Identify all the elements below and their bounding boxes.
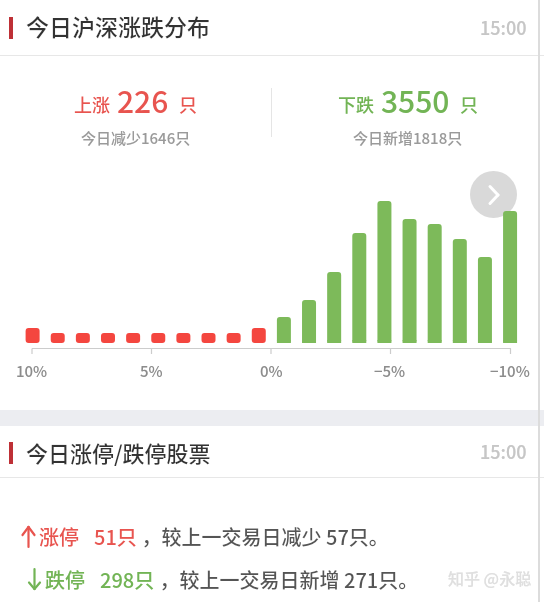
staticText: 知乎 @永聪 [448, 566, 532, 588]
staticText: 51只 [94, 522, 137, 551]
staticText: ，较上一交易日减少 57只。 [137, 522, 389, 551]
staticText: 226 [117, 78, 169, 121]
staticText: 上涨 [74, 91, 115, 117]
staticText: 5% [140, 360, 163, 380]
button[interactable]: 涨停 [21, 518, 389, 555]
staticText: 298只 [100, 565, 155, 594]
staticText: 今日减少1646只 [81, 127, 191, 149]
staticText: 下跌 [338, 91, 379, 117]
staticText: 15:00 [480, 14, 527, 40]
button[interactable] [470, 171, 517, 218]
staticText: 只 [456, 91, 479, 117]
staticText: 跌停 [45, 565, 85, 594]
staticText: 今日涨停/跌停股票 [26, 436, 211, 468]
staticText: 今日新增1818只 [353, 127, 463, 149]
staticText: 10% [16, 360, 48, 380]
button[interactable]: 今日沪深涨跌分布 [0, 0, 544, 56]
button[interactable]: 今日涨停/跌停股票 [0, 425, 544, 478]
staticText: 涨停 [39, 522, 79, 551]
staticText: ，较上一交易日新增 271只。 [155, 565, 419, 594]
staticText: 15:00 [480, 438, 527, 464]
staticText: 0% [260, 360, 283, 380]
staticText: 今日沪深涨跌分布 [26, 9, 210, 42]
button[interactable]: 跌停 [27, 561, 419, 598]
staticText: −5% [374, 360, 406, 380]
staticText: 只 [175, 91, 198, 117]
staticText: −10% [490, 360, 530, 380]
staticText: 3550 [381, 78, 450, 121]
